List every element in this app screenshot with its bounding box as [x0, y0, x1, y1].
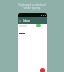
staticText: Keyboard undocked: [0, 3, 64, 7]
button[interactable]: Add: [40, 68, 45, 72]
staticText: Inbox: [23, 19, 30, 23]
staticText: while typing: [0, 6, 64, 10]
button[interactable]: Compose: [36, 24, 41, 27]
